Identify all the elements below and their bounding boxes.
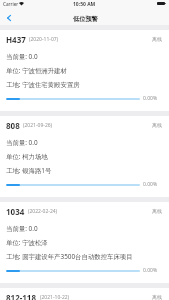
staticText: 当前量: 0.0 [6,138,38,147]
staticText: 0.00% [143,181,158,188]
staticText: 808 [6,120,20,131]
staticText: 离线 [152,294,162,300]
staticText: 1034 [6,206,25,217]
staticText: 当前量: 0.0 [6,52,38,61]
staticText: 0.00% [143,267,158,274]
staticText: 低位预警 [73,15,98,23]
staticText: (2020-11-07) [29,36,59,43]
staticText: 离线 [152,208,162,214]
staticText: 当前量: 0.0 [6,224,38,233]
staticText: 工地: 银海路1号 [6,166,52,175]
button[interactable]: Back [0,13,15,25]
staticText: 10:50 AM [73,1,96,8]
staticText: 单位: 宁波松泽 [6,238,48,247]
staticText: 0.00% [143,95,158,102]
staticText: (2022-02-24) [28,208,58,215]
staticText: 工地: 圆宇建设年产3500台自动数控车床项目 [6,252,133,261]
staticText: 单位: 宁波恒洲升建材 [6,66,67,75]
staticText: Carrier [3,1,19,7]
button[interactable]: 1034 [0,202,169,283]
staticText: 812-118 [6,292,37,300]
button[interactable]: 812-118 [0,288,169,300]
staticText: H437 [6,34,26,45]
button[interactable]: 808 [0,116,169,197]
staticText: (2021-09-26) [23,122,53,129]
staticText: 工地: 宁波住宅黄殿安置房 [6,80,80,89]
staticText: (2021-10-22) [40,294,70,300]
staticText: 离线 [152,122,162,128]
staticText: 离线 [152,36,162,42]
staticText: 单位: 柯力场地 [6,152,48,161]
button[interactable]: H437 [0,30,169,111]
